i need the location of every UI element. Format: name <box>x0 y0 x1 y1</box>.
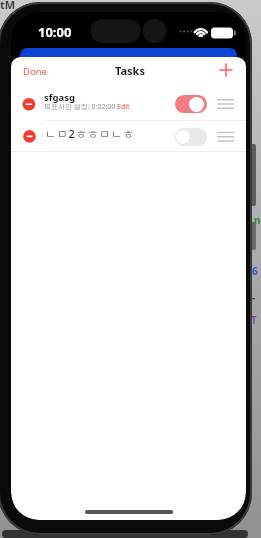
staticText: tM <box>0 0 16 12</box>
button[interactable]: Done <box>19 62 53 77</box>
button[interactable] <box>216 60 236 80</box>
staticText: Done <box>23 65 47 78</box>
staticText: 6 <box>252 264 258 278</box>
staticText: BAY! <box>60 530 79 538</box>
button[interactable] <box>175 95 207 113</box>
staticText: T <box>251 313 257 327</box>
staticText: n <box>254 213 261 227</box>
staticText: 목표시간 설정: 0:02:00 Edit <box>44 102 130 112</box>
button[interactable]: ㄴㅁ2ㅎㅎㅁㄴㅎ <box>11 121 246 152</box>
staticText: sfgasg <box>44 91 75 104</box>
staticText: 10:00 <box>38 23 72 41</box>
button[interactable] <box>175 128 207 146</box>
staticText: Tasks <box>115 63 145 78</box>
staticText: ㄴㅁ2ㅎㅎㅁㄴㅎ <box>45 126 135 141</box>
staticText: - <box>252 290 256 304</box>
button[interactable]: sfgasg <box>11 87 246 120</box>
